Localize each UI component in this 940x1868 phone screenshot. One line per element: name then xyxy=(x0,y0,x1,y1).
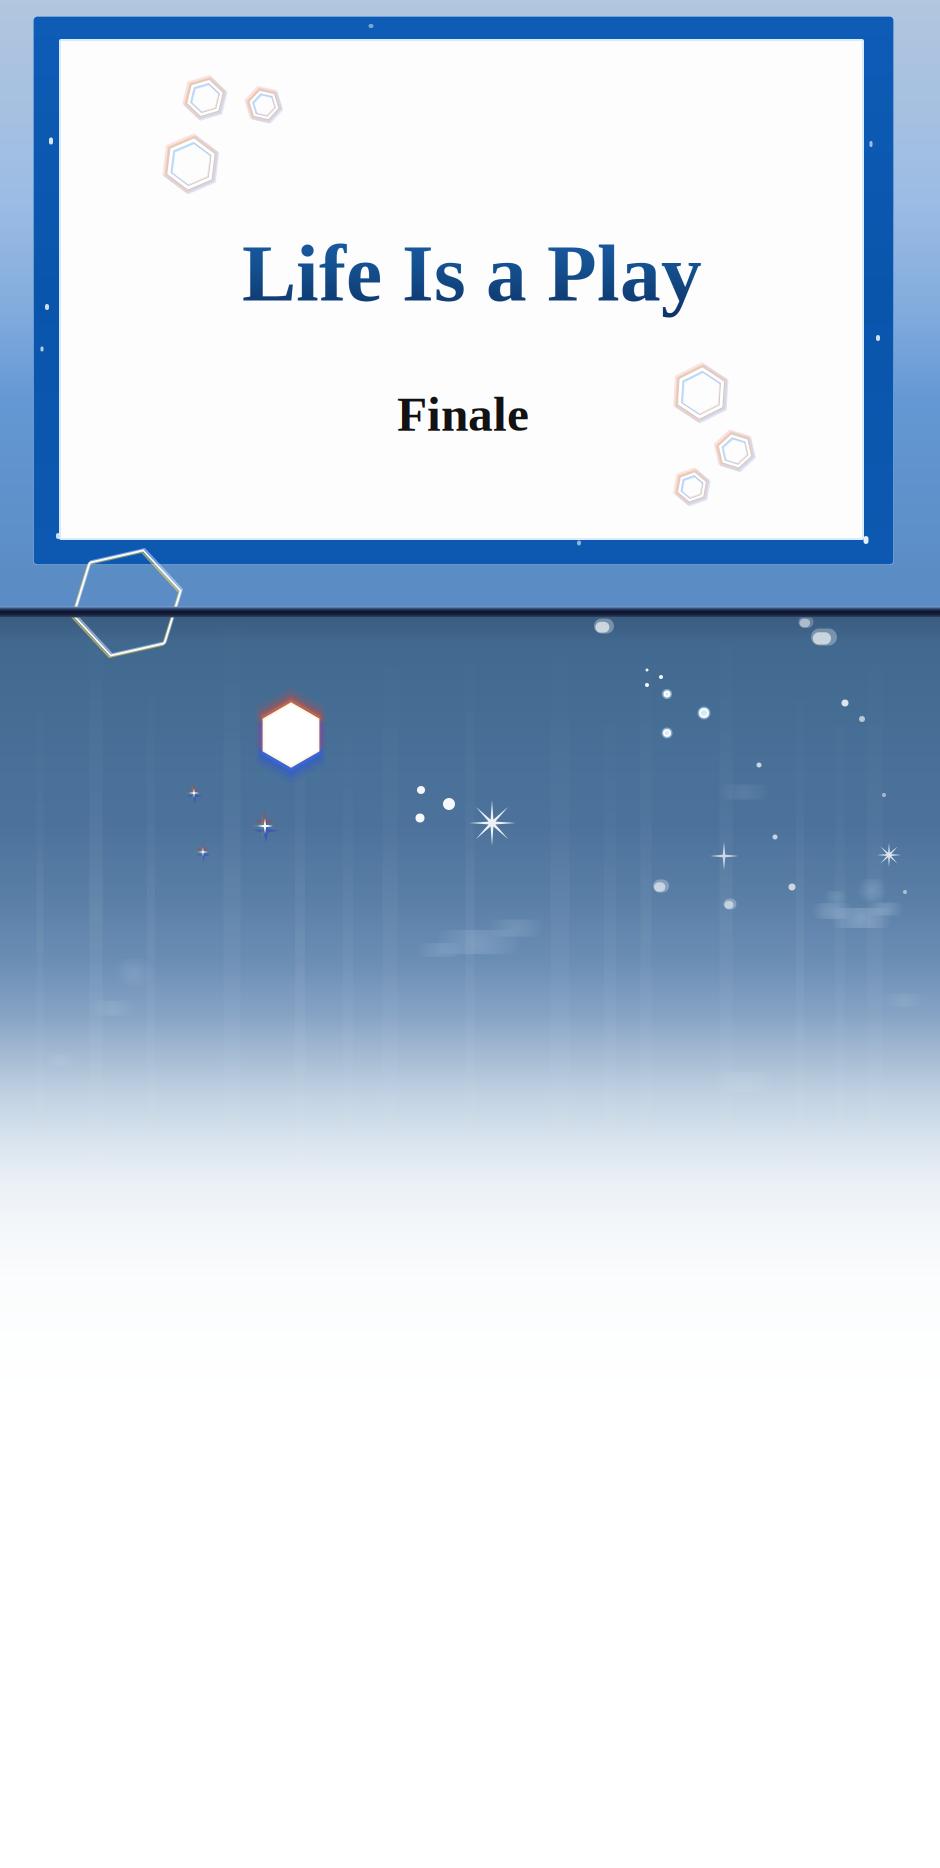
staticText: Finale xyxy=(397,387,529,441)
